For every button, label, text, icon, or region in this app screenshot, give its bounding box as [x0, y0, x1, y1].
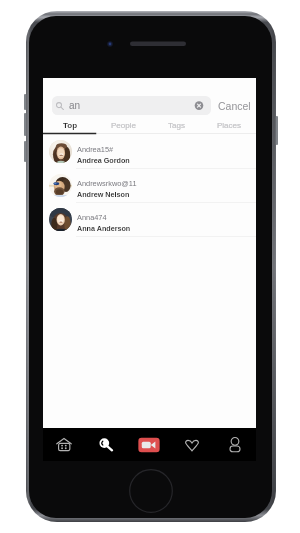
staticText: Anna474 — [77, 213, 107, 221]
button[interactable]: Andrea15# — [43, 135, 256, 169]
staticText: People — [111, 121, 136, 130]
button[interactable]: an — [52, 96, 211, 115]
button[interactable]: Activity — [170, 428, 213, 461]
staticText: Tags — [168, 121, 185, 130]
button[interactable]: Anna474 — [43, 203, 256, 237]
staticText: Andrea15# — [77, 145, 114, 153]
button[interactable]: Clear search — [195, 96, 207, 115]
button[interactable]: Cancel — [218, 100, 251, 112]
button[interactable]: People — [97, 116, 150, 135]
staticText: Places — [217, 121, 242, 130]
staticText: Cancel — [218, 100, 251, 112]
button[interactable]: Top — [43, 116, 97, 135]
staticText: Top — [63, 121, 78, 130]
staticText: an — [69, 100, 81, 111]
button[interactable]: Tags — [150, 116, 203, 135]
button[interactable]: Home — [43, 428, 85, 461]
button[interactable]: Andrewsrkwo@11 — [43, 169, 256, 203]
staticText: Anna Anderson — [77, 224, 131, 232]
button[interactable]: Places — [203, 116, 256, 135]
staticText: Andrew Nelson — [77, 190, 130, 198]
button[interactable]: Profile — [213, 428, 256, 461]
button[interactable]: Reels — [127, 428, 170, 461]
button[interactable]: Search — [85, 428, 127, 461]
staticText: Andrea Gordon — [77, 156, 130, 164]
staticText: Andrewsrkwo@11 — [77, 179, 137, 187]
